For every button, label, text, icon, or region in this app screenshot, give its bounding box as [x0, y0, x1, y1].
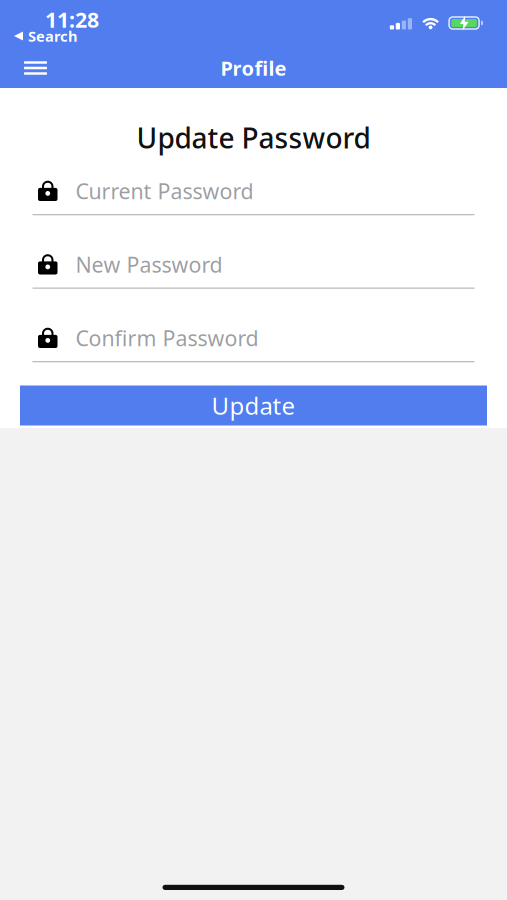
- button[interactable]: Update: [20, 385, 487, 425]
- staticText: Update Password: [136, 119, 370, 156]
- staticText: Confirm Password: [75, 324, 258, 352]
- button[interactable]: Search: [0, 6, 78, 41]
- button[interactable]: Current Password: [0, 162, 507, 235]
- staticText: Profile: [220, 55, 286, 81]
- staticText: New Password: [75, 250, 222, 279]
- button[interactable]: Confirm Password: [0, 309, 507, 382]
- staticText: Update: [211, 390, 295, 421]
- staticText: 11:28: [45, 5, 99, 34]
- staticText: Current Password: [75, 177, 253, 205]
- button[interactable]: Menu: [0, 48, 47, 88]
- button[interactable]: New Password: [0, 235, 507, 309]
- staticText: Search: [28, 26, 78, 46]
